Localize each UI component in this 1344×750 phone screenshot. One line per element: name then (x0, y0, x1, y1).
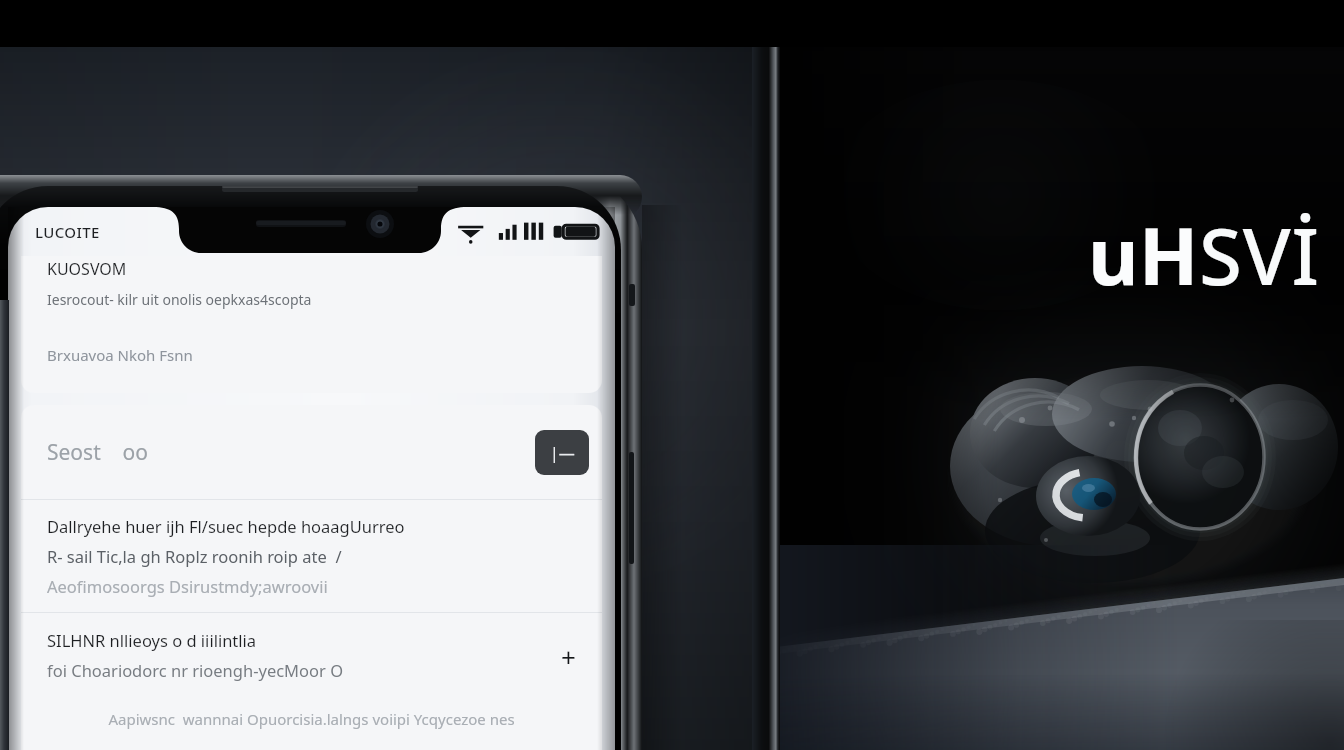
button[interactable]: Add (552, 639, 584, 671)
staticText: |— (550, 442, 575, 464)
staticText: uH (1088, 202, 1199, 308)
staticText: SILHNR nllieoys o d iiilintlia (47, 629, 257, 651)
other: Wifi, signal and battery status (450, 219, 598, 245)
staticText: R- sail Tic,la gh Roplz roonih roip ate … (47, 545, 342, 567)
button[interactable]: Filter (535, 430, 589, 475)
staticText: Brxuavoa Nkoh Fsnn (47, 345, 193, 365)
button[interactable]: Seost oo (21, 405, 602, 499)
staticText: SVİ (1199, 202, 1320, 308)
staticText: Aapiwsnc wannnai Opuorcisia.lalngs voiip… (47, 709, 576, 729)
button[interactable]: Dallryehe huer ijh Fl/suec hepde hoaagUu… (21, 500, 602, 612)
button[interactable]: uHSVI brand (1088, 202, 1320, 308)
staticText: Aeofimosoorgs Dsirustmdy;awroovii (47, 575, 328, 597)
staticText: LUCOITE (35, 222, 100, 242)
staticText: KUOSVOM (47, 258, 127, 280)
button[interactable]: KUOSVOM (21, 256, 602, 393)
staticText: Dallryehe huer ijh Fl/suec hepde hoaagUu… (47, 515, 405, 537)
button[interactable]: SILHNR nllieoys o d iiilintlia (21, 613, 602, 689)
staticText: + (561, 639, 576, 671)
staticText: foi Choariodorc nr rioengh-yecMoor O (47, 659, 344, 681)
staticText: Iesrocout- kilr uit onolis oepkxas4scopt… (47, 290, 312, 309)
staticText: Seost oo (47, 438, 148, 467)
